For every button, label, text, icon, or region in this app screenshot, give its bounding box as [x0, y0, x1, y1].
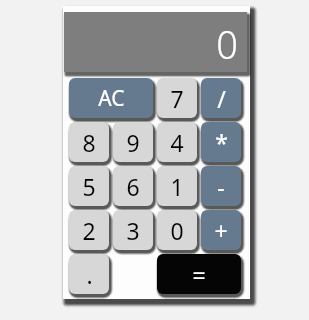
- button[interactable]: 3: [113, 210, 153, 250]
- staticText: 9: [126, 127, 140, 158]
- button[interactable]: Plus: [201, 210, 241, 250]
- staticText: 4: [170, 127, 184, 158]
- button[interactable]: AC: [69, 78, 153, 118]
- button[interactable]: 2: [69, 210, 109, 250]
- staticText: 5: [82, 171, 96, 202]
- button[interactable]: 1: [157, 166, 197, 206]
- staticText: +: [214, 215, 228, 246]
- staticText: 6: [126, 171, 140, 202]
- staticText: 2: [82, 215, 96, 246]
- staticText: AC: [98, 84, 125, 113]
- button[interactable]: 9: [113, 122, 153, 162]
- button[interactable]: Equals: [157, 254, 241, 294]
- button[interactable]: 5: [69, 166, 109, 206]
- button[interactable]: Minus: [201, 166, 241, 206]
- button[interactable]: 6: [113, 166, 153, 206]
- button[interactable]: 0: [157, 210, 197, 250]
- staticText: 8: [82, 127, 96, 158]
- staticText: .: [86, 259, 93, 290]
- button[interactable]: 8: [69, 122, 109, 162]
- button[interactable]: Divide: [201, 78, 241, 118]
- staticText: 3: [126, 215, 140, 246]
- staticText: /: [217, 83, 226, 114]
- staticText: -: [217, 171, 225, 202]
- button[interactable]: 4: [157, 122, 197, 162]
- staticText: *: [215, 127, 228, 158]
- button[interactable]: 7: [157, 78, 197, 118]
- staticText: 7: [170, 83, 184, 114]
- staticText: 0: [216, 18, 238, 70]
- staticText: 1: [170, 171, 184, 202]
- button[interactable]: Multiply: [201, 122, 241, 162]
- button[interactable]: Decimal point: [69, 254, 109, 294]
- staticText: =: [192, 259, 206, 290]
- staticText: 0: [170, 215, 184, 246]
